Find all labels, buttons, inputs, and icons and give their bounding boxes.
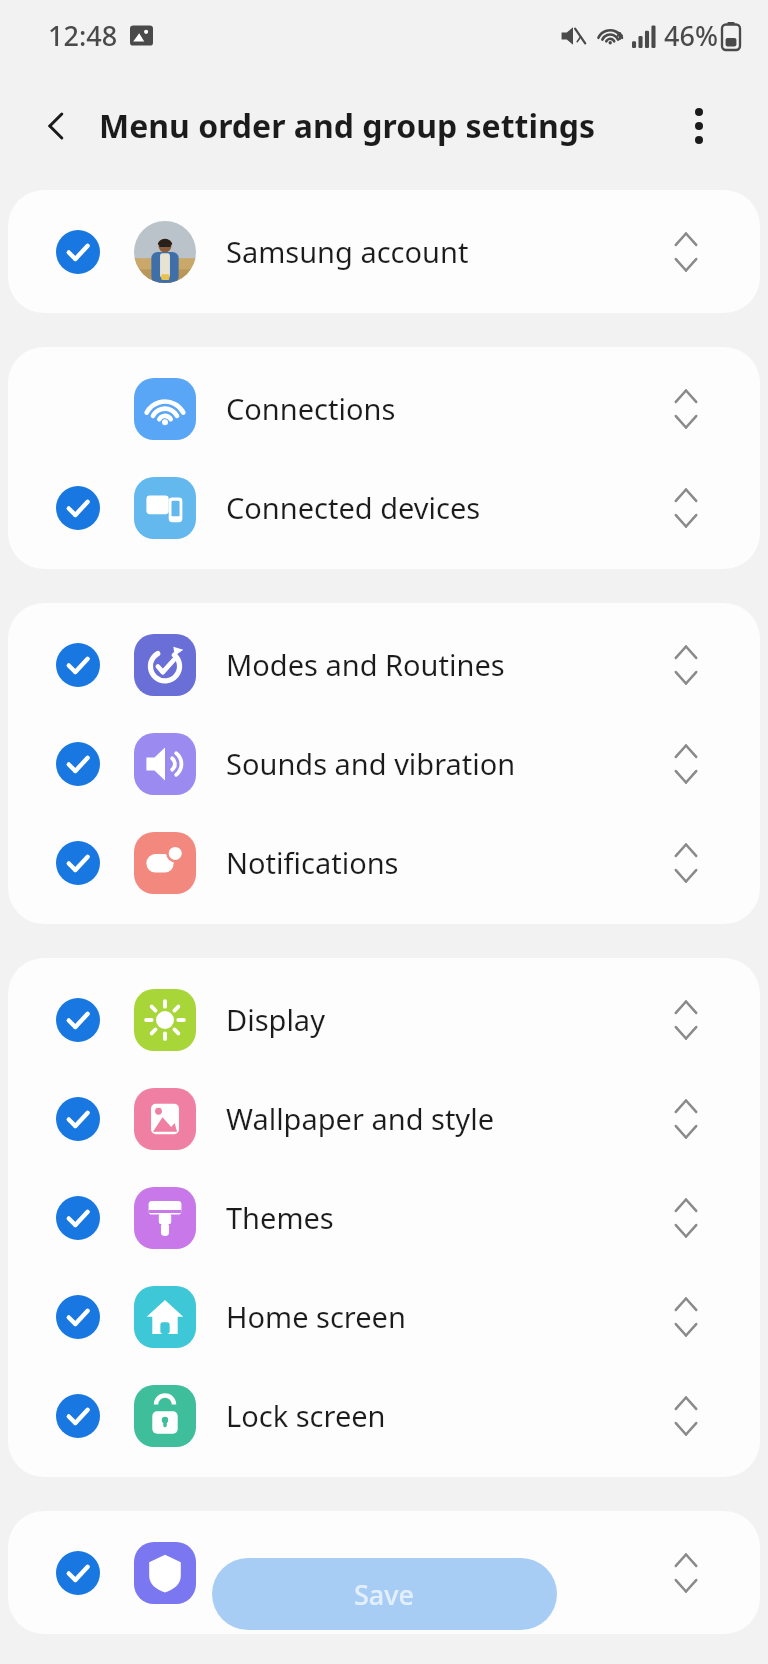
staticText: Connected devices bbox=[226, 488, 481, 527]
button[interactable]: Display bbox=[8, 970, 760, 1069]
button[interactable]: Reorder Samsung account bbox=[662, 228, 710, 276]
button[interactable]: Save bbox=[212, 1558, 557, 1630]
staticText: Display bbox=[226, 1000, 325, 1039]
staticText: Notifications bbox=[226, 843, 399, 882]
staticText: Security and privacy bbox=[226, 1553, 499, 1592]
staticText: Lock screen bbox=[226, 1396, 386, 1435]
button[interactable]: Notifications bbox=[8, 813, 760, 912]
staticText: Modes and Routines bbox=[226, 645, 505, 684]
button[interactable]: Connections bbox=[8, 359, 760, 458]
button[interactable]: Samsung account bbox=[8, 202, 760, 301]
button[interactable]: Modes and Routines bbox=[8, 615, 760, 714]
staticText: Sounds and vibration bbox=[226, 744, 516, 783]
button[interactable]: Reorder Themes bbox=[662, 1194, 710, 1242]
staticText: Save bbox=[354, 1576, 415, 1613]
button[interactable]: Reorder Sounds and vibration bbox=[662, 740, 710, 788]
button[interactable]: Themes bbox=[8, 1168, 760, 1267]
button[interactable]: Back bbox=[26, 95, 88, 157]
staticText: Wallpaper and style bbox=[226, 1099, 494, 1138]
staticText: Themes bbox=[226, 1198, 334, 1237]
button[interactable]: Reorder Connected devices bbox=[662, 484, 710, 532]
button[interactable]: Sounds and vibration bbox=[8, 714, 760, 813]
button[interactable]: Reorder Modes and Routines bbox=[662, 641, 710, 689]
button[interactable]: Reorder Security and privacy bbox=[662, 1549, 710, 1597]
button[interactable]: Wallpaper and style bbox=[8, 1069, 760, 1168]
button[interactable]: More options bbox=[672, 99, 726, 153]
staticText: 12:48 bbox=[48, 17, 118, 54]
staticText: Menu order and group settings bbox=[99, 104, 596, 148]
button[interactable]: Reorder Lock screen bbox=[662, 1392, 710, 1440]
button[interactable]: Reorder Notifications bbox=[662, 839, 710, 887]
staticText: Samsung account bbox=[226, 232, 469, 271]
button[interactable]: Security and privacy bbox=[8, 1523, 760, 1622]
button[interactable]: Connected devices bbox=[8, 458, 760, 557]
button[interactable]: Home screen bbox=[8, 1267, 760, 1366]
staticText: 46% bbox=[664, 17, 718, 54]
staticText: Connections bbox=[226, 389, 396, 428]
button[interactable]: Reorder Home screen bbox=[662, 1293, 710, 1341]
button[interactable]: Reorder Wallpaper and style bbox=[662, 1095, 710, 1143]
button[interactable]: Reorder Display bbox=[662, 996, 710, 1044]
staticText: Home screen bbox=[226, 1297, 406, 1336]
button[interactable]: Reorder Connections bbox=[662, 385, 710, 433]
button[interactable]: Lock screen bbox=[8, 1366, 760, 1465]
